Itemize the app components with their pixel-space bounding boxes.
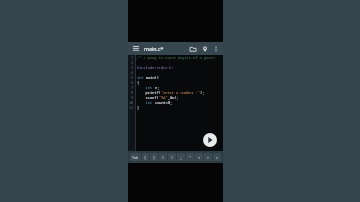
- staticText: ": [189, 155, 192, 160]
- staticText: 1: [131, 55, 134, 60]
- staticText: 8: [131, 90, 134, 95]
- staticText: 10: [129, 100, 134, 105]
- staticText: 6: [131, 80, 134, 85]
- button[interactable]: Open navigation drawer: [131, 44, 140, 53]
- button[interactable]: (: [159, 153, 167, 161]
- staticText: int: [137, 100, 155, 105]
- staticText: /* c prog to count digits of a given num…: [137, 55, 223, 60]
- staticText: int: [137, 75, 146, 80]
- button[interactable]: =: [213, 153, 221, 161]
- staticText: (: [162, 155, 165, 160]
- staticText: 7: [131, 85, 134, 90]
- staticText: scanf(: [137, 95, 159, 100]
- staticText: );: [200, 90, 205, 95]
- button[interactable]: ): [168, 153, 176, 161]
- staticText: 4: [131, 70, 134, 75]
- staticText: Tab: [132, 155, 139, 160]
- staticText: <: [198, 155, 201, 160]
- staticText: 5: [131, 75, 134, 80]
- staticText: {: [144, 155, 147, 160]
- staticText: int: [137, 85, 155, 90]
- button[interactable]: }: [150, 153, 158, 161]
- staticText: =: [216, 155, 219, 160]
- button[interactable]: Go to line: [200, 44, 210, 54]
- staticText: n;: [155, 85, 160, 90]
- button[interactable]: Open file: [188, 44, 198, 54]
- staticText: "enter a number :": [161, 90, 200, 95]
- staticText: ;: [180, 155, 183, 160]
- staticText: 3: [131, 65, 134, 70]
- staticText: "%d": [159, 95, 168, 100]
- staticText: {: [137, 80, 140, 85]
- staticText: ,&n);: [168, 95, 179, 100]
- staticText: 9: [131, 95, 134, 100]
- staticText: #include<stdio.h>: [137, 65, 174, 70]
- button[interactable]: <: [195, 153, 203, 161]
- button[interactable]: ;: [177, 153, 185, 161]
- staticText: >: [207, 155, 210, 160]
- button[interactable]: Run: [203, 133, 217, 147]
- staticText: ): [171, 155, 174, 160]
- button[interactable]: {: [142, 153, 149, 161]
- button[interactable]: ": [186, 153, 194, 161]
- staticText: printf(: [137, 90, 161, 95]
- button[interactable]: Tab: [130, 153, 141, 161]
- staticText: main.c*: [144, 45, 164, 52]
- staticText: count=0;: [155, 100, 173, 105]
- staticText: }: [137, 105, 140, 110]
- staticText: 11: [129, 105, 134, 110]
- button[interactable]: >: [204, 153, 212, 161]
- staticText: 2: [131, 60, 134, 65]
- staticText: }: [153, 155, 156, 160]
- button[interactable]: More options: [211, 44, 220, 53]
- staticText: main(): [146, 75, 159, 80]
